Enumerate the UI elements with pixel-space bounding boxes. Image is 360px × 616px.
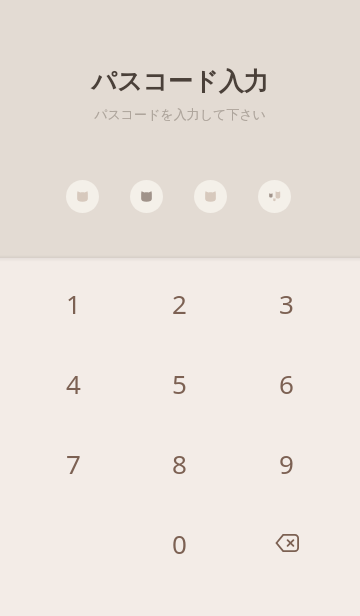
staticText: 6 — [279, 366, 294, 401]
button[interactable] — [258, 180, 291, 213]
button[interactable]: 9 — [233, 423, 340, 503]
staticText: 1 — [66, 286, 81, 321]
staticText: 7 — [66, 446, 81, 481]
other: Backspace — [275, 534, 299, 552]
button[interactable]: 8 — [126, 423, 233, 503]
staticText: 4 — [66, 366, 81, 401]
staticText: 8 — [172, 446, 187, 481]
staticText: パスコード入力 — [91, 66, 269, 97]
button[interactable]: 3 — [233, 263, 340, 343]
button[interactable]: 1 — [20, 263, 126, 343]
staticText: 3 — [279, 286, 294, 321]
button[interactable] — [130, 180, 163, 213]
staticText: 0 — [172, 526, 187, 561]
button[interactable]: 5 — [126, 343, 233, 423]
button[interactable]: 0 — [126, 503, 233, 583]
button[interactable]: 2 — [126, 263, 233, 343]
button[interactable]: Backspace — [233, 503, 340, 583]
staticText: 9 — [279, 446, 294, 481]
button[interactable]: 4 — [20, 343, 126, 423]
button[interactable] — [66, 180, 99, 213]
button[interactable] — [194, 180, 227, 213]
staticText: パスコードを入力して下さい — [94, 106, 266, 122]
staticText: 2 — [172, 286, 187, 321]
button[interactable]: 7 — [20, 423, 126, 503]
staticText: 5 — [172, 366, 187, 401]
button[interactable]: 6 — [233, 343, 340, 423]
